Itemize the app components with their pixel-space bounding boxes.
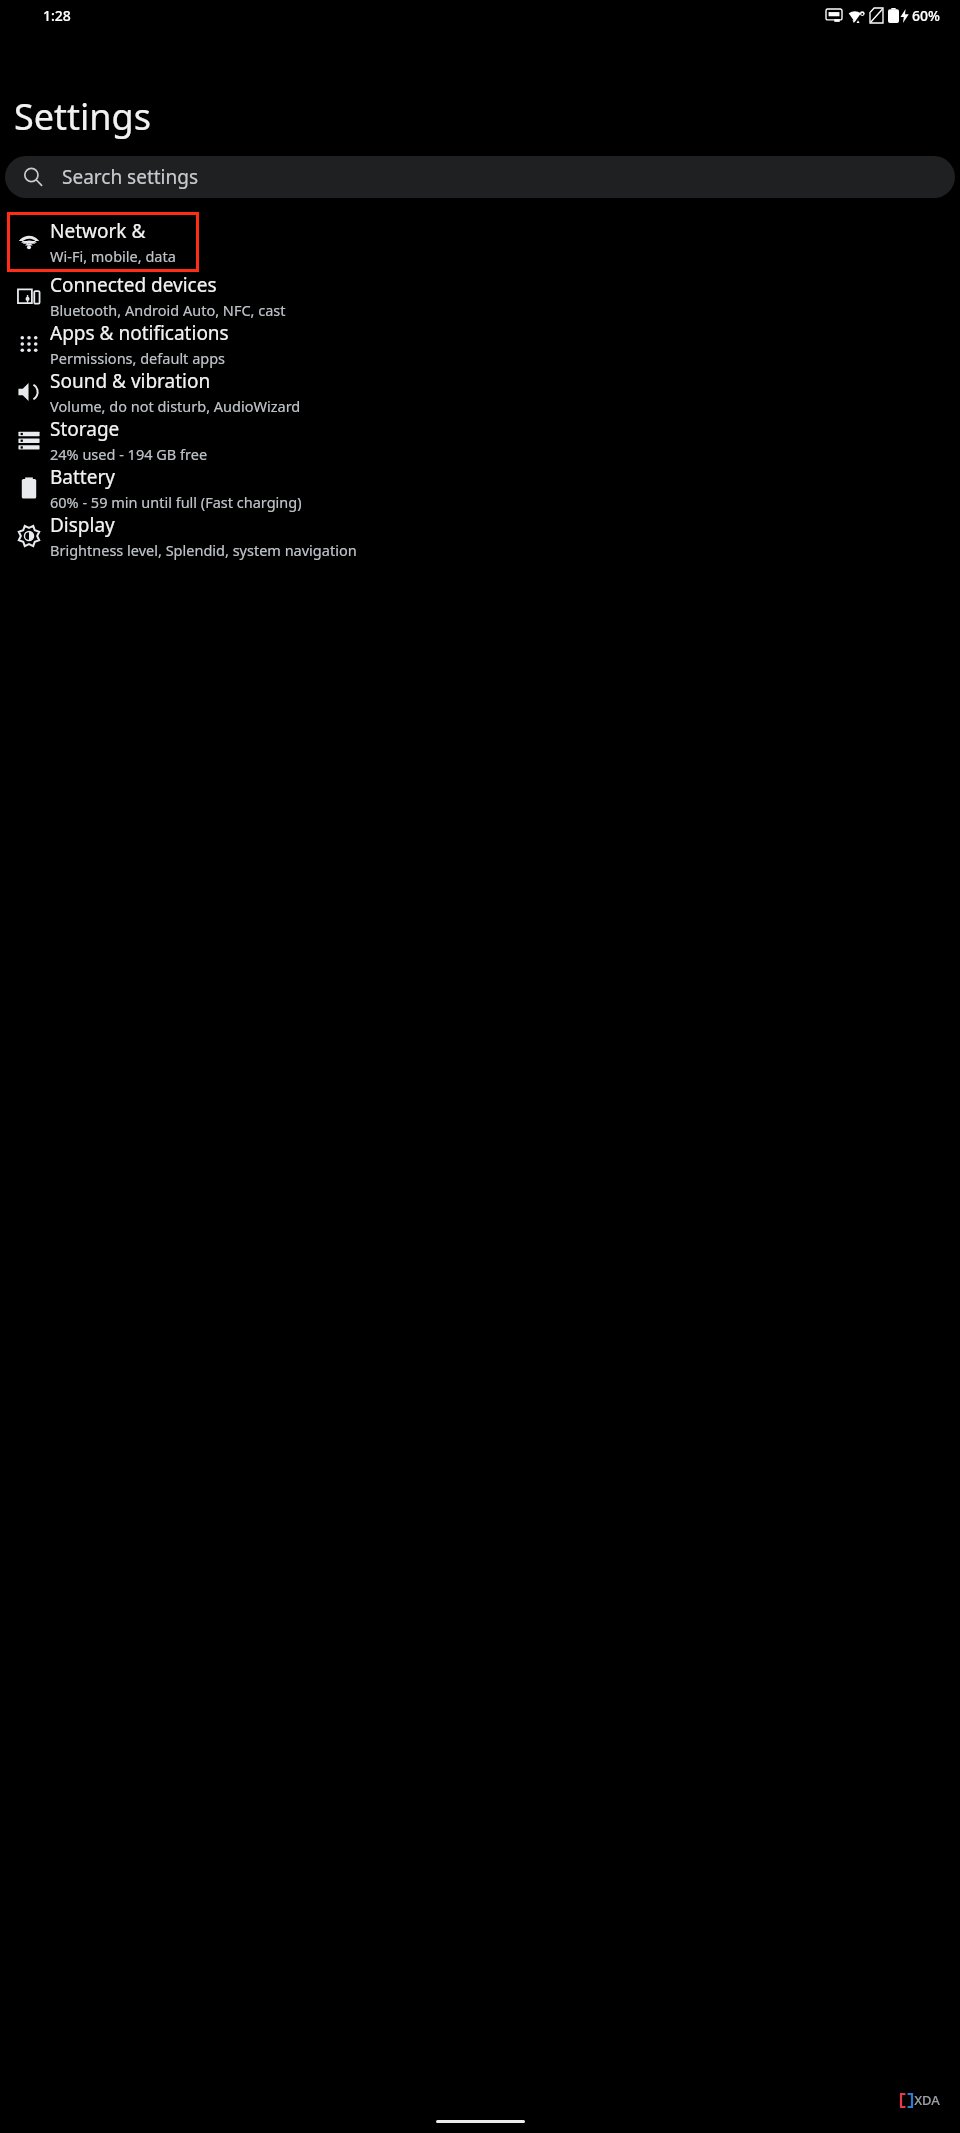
button[interactable]: Display [0,512,960,560]
staticText: Connected devices [50,272,217,298]
staticText: Network & internet [50,218,199,244]
button[interactable]: Apps & notifications [0,320,960,368]
staticText: Settings [14,92,151,141]
staticText: Sound & vibration [50,368,211,394]
staticText: Display [50,512,115,538]
button[interactable]: Storage [0,416,960,464]
button[interactable]: Connected devices [0,272,960,320]
staticText: Wi-Fi, mobile, data usage, hotspot, SIM [50,246,199,266]
button[interactable]: Search settings [5,156,955,198]
button[interactable]: Battery [0,464,960,512]
staticText: Volume, do not disturb, AudioWizard [50,396,301,416]
staticText: Search settings [62,164,199,190]
staticText: 60% [912,6,940,25]
staticText: 60% - 59 min until full (Fast charging) [50,492,302,512]
staticText: 1:28 [43,6,71,25]
staticText: Bluetooth, Android Auto, NFC, cast [50,300,286,320]
staticText: Permissions, default apps [50,348,226,368]
button[interactable]: Sound & vibration [0,368,960,416]
staticText: 24% used - 194 GB free [50,444,208,464]
staticText: Storage [50,416,120,442]
staticText: Apps & notifications [50,320,229,346]
button[interactable]: Network & internet [7,212,199,272]
staticText: Brightness level, Splendid, system navig… [50,540,357,560]
staticText: Battery [50,464,115,490]
staticText: XDA [914,2091,940,2109]
